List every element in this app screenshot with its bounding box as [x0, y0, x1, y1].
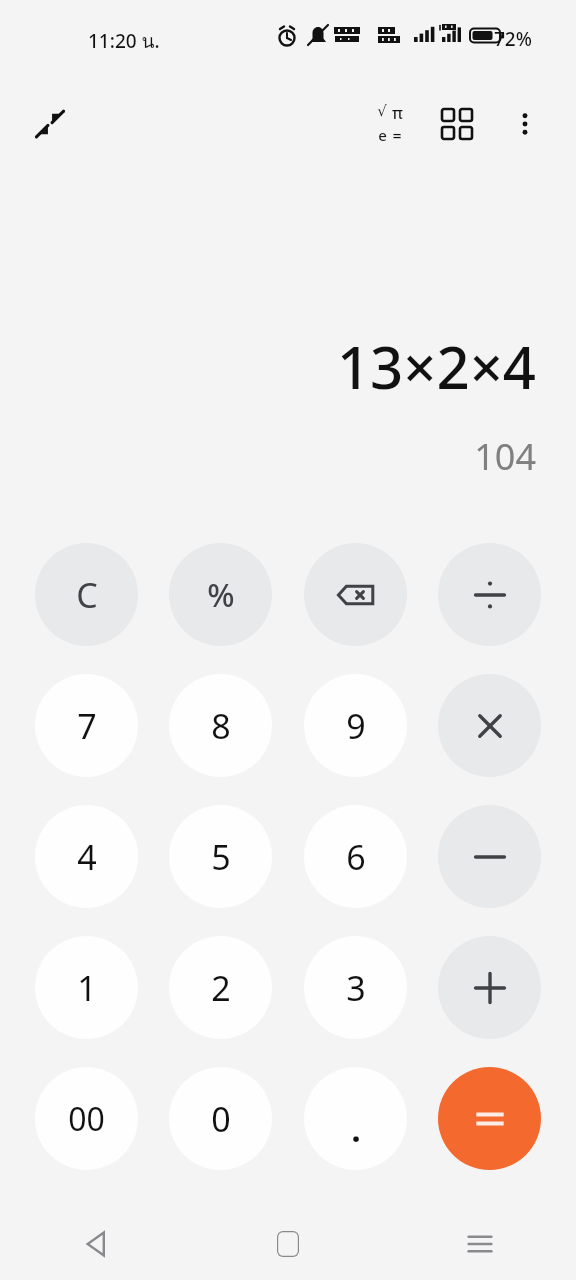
button[interactable]: Divide — [438, 543, 541, 646]
button[interactable]: Recent apps — [444, 1208, 516, 1280]
button[interactable]: 3 — [304, 936, 407, 1039]
staticText: 2 — [211, 965, 231, 1011]
staticText: 00 — [68, 1097, 105, 1141]
button[interactable]: Clear — [35, 543, 138, 646]
button[interactable]: 4 — [35, 805, 138, 908]
button[interactable]: Collapse — [18, 92, 82, 156]
staticText: = — [392, 125, 402, 147]
button[interactable]: 1 — [35, 936, 138, 1039]
button[interactable]: Back — [60, 1208, 132, 1280]
staticText: 3 — [346, 965, 366, 1011]
staticText: 7 — [77, 703, 97, 749]
button[interactable]: 2 — [169, 936, 272, 1039]
staticText: 104 — [474, 432, 536, 481]
button[interactable]: 5 — [169, 805, 272, 908]
button[interactable]: Plus — [438, 936, 541, 1039]
button[interactable]: 8 — [169, 674, 272, 777]
button[interactable]: Scientific mode — [358, 92, 422, 156]
staticText: 4 — [77, 834, 97, 880]
button[interactable]: Percent — [169, 543, 272, 646]
button[interactable]: Home — [252, 1208, 324, 1280]
button[interactable]: Multiply — [438, 674, 541, 777]
button[interactable]: Unit converter — [425, 92, 489, 156]
staticText: 11:20 น. — [88, 26, 160, 56]
staticText: 8 — [211, 703, 231, 749]
staticText: 5 — [211, 834, 231, 880]
staticText: e — [378, 125, 387, 145]
staticText: . — [351, 1106, 361, 1152]
button[interactable]: More options — [493, 92, 557, 156]
button[interactable]: 0 — [169, 1067, 272, 1170]
staticText: 0 — [211, 1096, 231, 1142]
button[interactable]: 6 — [304, 805, 407, 908]
button[interactable]: 00 — [35, 1067, 138, 1170]
button[interactable]: 9 — [304, 674, 407, 777]
staticText: 9 — [346, 703, 366, 749]
staticText: 13×2×4 — [336, 327, 536, 406]
button[interactable]: Minus — [438, 805, 541, 908]
staticText: C — [76, 572, 98, 618]
staticText: 6 — [346, 834, 366, 880]
staticText: 1 — [77, 965, 97, 1011]
button[interactable]: 7 — [35, 674, 138, 777]
staticText: √ — [377, 102, 387, 119]
staticText: % — [207, 573, 235, 617]
button[interactable]: Decimal point — [304, 1067, 407, 1170]
staticText: 72% — [494, 26, 532, 52]
staticText: π — [392, 102, 403, 124]
button[interactable]: Equals — [438, 1067, 541, 1170]
button[interactable]: Backspace — [304, 543, 407, 646]
